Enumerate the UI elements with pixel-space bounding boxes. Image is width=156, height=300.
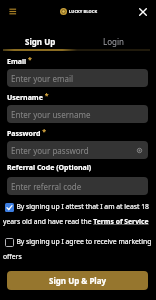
staticText: By signing up I attest that I am at leas…	[3, 202, 155, 226]
button[interactable]: Enter your username	[7, 105, 148, 123]
staticText: Sign Up & Play	[49, 275, 107, 286]
staticText: Enter your username	[11, 109, 91, 120]
staticText: Login	[103, 36, 124, 47]
staticText: Username *	[7, 91, 49, 102]
button[interactable]: Enter your password	[7, 141, 148, 159]
staticText: Enter your password	[11, 145, 89, 156]
button[interactable]: Sign Up & Play	[7, 271, 148, 290]
button[interactable]: Menu	[5, 6, 19, 20]
button[interactable]: Enter referral code	[7, 177, 148, 195]
staticText: Enter your email	[11, 73, 74, 84]
button[interactable]: Login	[77, 33, 150, 49]
staticText: Referral Code (Optional)	[7, 163, 92, 173]
button[interactable]: By signing up I agree to receive marketi…	[0, 236, 156, 264]
button[interactable]: Enter your email	[7, 69, 148, 87]
staticText: LUCKY BLOCK	[69, 9, 98, 14]
staticText: Sign Up	[25, 36, 56, 47]
button[interactable]: By signing up I attest that I am at leas…	[0, 201, 156, 229]
button[interactable]: Close	[137, 6, 149, 18]
staticText: Email *	[7, 55, 32, 66]
staticText: Enter referral code	[11, 181, 82, 192]
staticText: By signing up I agree to receive marketi…	[3, 237, 155, 261]
button[interactable]: Sign Up	[4, 33, 77, 49]
staticText: Password *	[7, 127, 46, 138]
